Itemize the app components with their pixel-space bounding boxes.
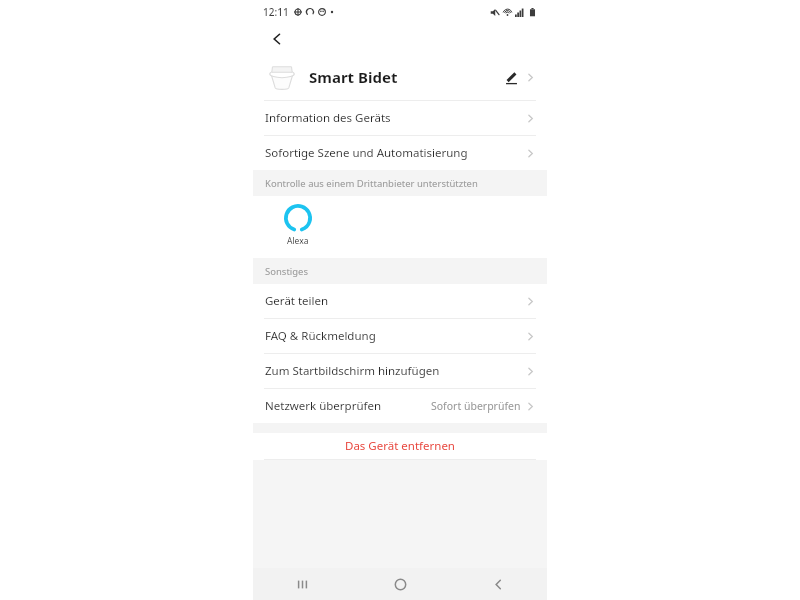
button[interactable]: Smart Bidet	[253, 54, 547, 100]
staticText: 12:11	[263, 5, 289, 19]
button[interactable]: Letzte Apps	[253, 568, 351, 600]
button[interactable]: Zum Startbildschirm hinzufügen	[253, 354, 547, 388]
staticText: Information des Geräts	[265, 110, 391, 126]
staticText: Netzwerk überprüfen	[265, 398, 382, 414]
staticText: Sofortige Szene und Automatisierung	[265, 145, 468, 161]
button[interactable]: Gerät teilen	[253, 284, 547, 318]
staticText: Das Gerät entfernen	[345, 438, 455, 454]
staticText: FAQ & Rückmeldung	[265, 328, 376, 344]
button[interactable]: Startbildschirm	[351, 568, 449, 600]
button[interactable]: Netzwerk überprüfen	[253, 389, 547, 423]
button[interactable]: Das Gerät entfernen	[253, 433, 547, 459]
button[interactable]: Alexa	[275, 204, 321, 247]
button[interactable]: Zurück	[449, 568, 547, 600]
button[interactable]: Sofortige Szene und Automatisierung	[253, 136, 547, 170]
button[interactable]: FAQ & Rückmeldung	[253, 319, 547, 353]
staticText: Kontrolle aus einem Drittanbieter unters…	[265, 177, 478, 190]
staticText: Smart Bidet	[309, 67, 398, 87]
button[interactable]: Information des Geräts	[253, 101, 547, 135]
other: Bearbeiten	[500, 66, 522, 88]
staticText: Gerät teilen	[265, 293, 329, 309]
staticText: Sonstiges	[265, 265, 309, 278]
staticText: Sofort überprüfen	[431, 399, 521, 413]
staticText: Zum Startbildschirm hinzufügen	[265, 363, 440, 379]
staticText: Alexa	[287, 235, 309, 247]
button[interactable]: Zurück	[265, 27, 289, 51]
